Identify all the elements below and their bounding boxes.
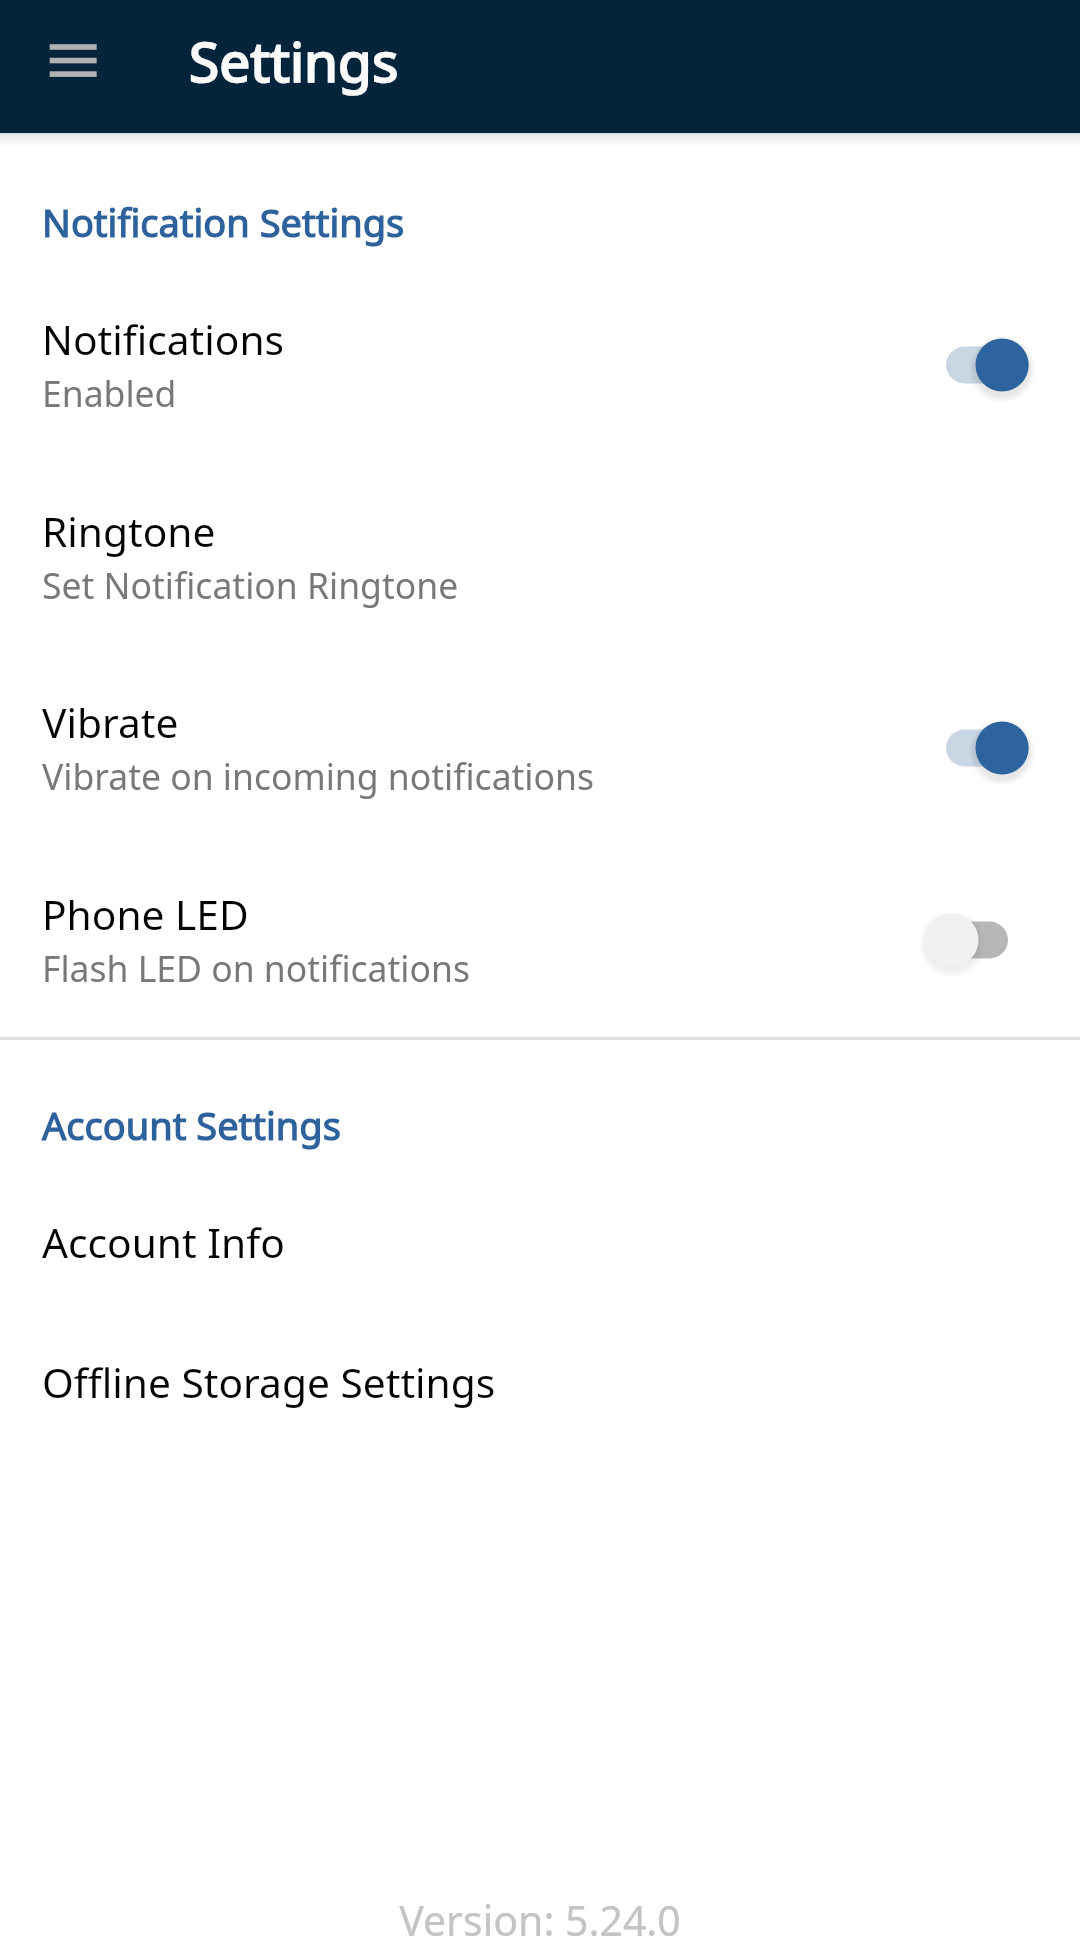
staticText: Set Notification Ringtone [42,561,459,609]
button[interactable]: Notifications enabled [920,325,1040,405]
staticText: Flash LED on notifications [42,944,470,992]
staticText: Notification Settings [42,196,405,248]
button[interactable]: Account Info [0,1214,1080,1268]
button[interactable]: Offline Storage Settings [0,1354,1080,1408]
staticText: Version: 5.24.0 [0,1892,1080,1943]
button[interactable]: Vibrate enabled [920,708,1040,788]
staticText: Vibrate on incoming notifications [42,752,594,800]
staticText: Account Info [42,1214,285,1268]
button[interactable]: Vibrate [0,694,1080,803]
staticText: Phone LED [42,886,249,941]
staticText: Ringtone [42,503,216,558]
button[interactable]: Phone LED [0,886,1080,995]
button[interactable]: Notifications [0,311,1080,420]
staticText: Settings [189,23,399,98]
button[interactable]: Ringtone [0,503,1080,612]
staticText: Offline Storage Settings [42,1354,496,1408]
staticText: Vibrate [42,694,179,749]
button[interactable]: Open navigation menu [26,13,120,107]
staticText: Account Settings [42,1099,341,1151]
staticText: Enabled [42,369,177,417]
button[interactable]: Phone LED disabled [920,900,1040,980]
staticText: Notifications [42,311,285,366]
